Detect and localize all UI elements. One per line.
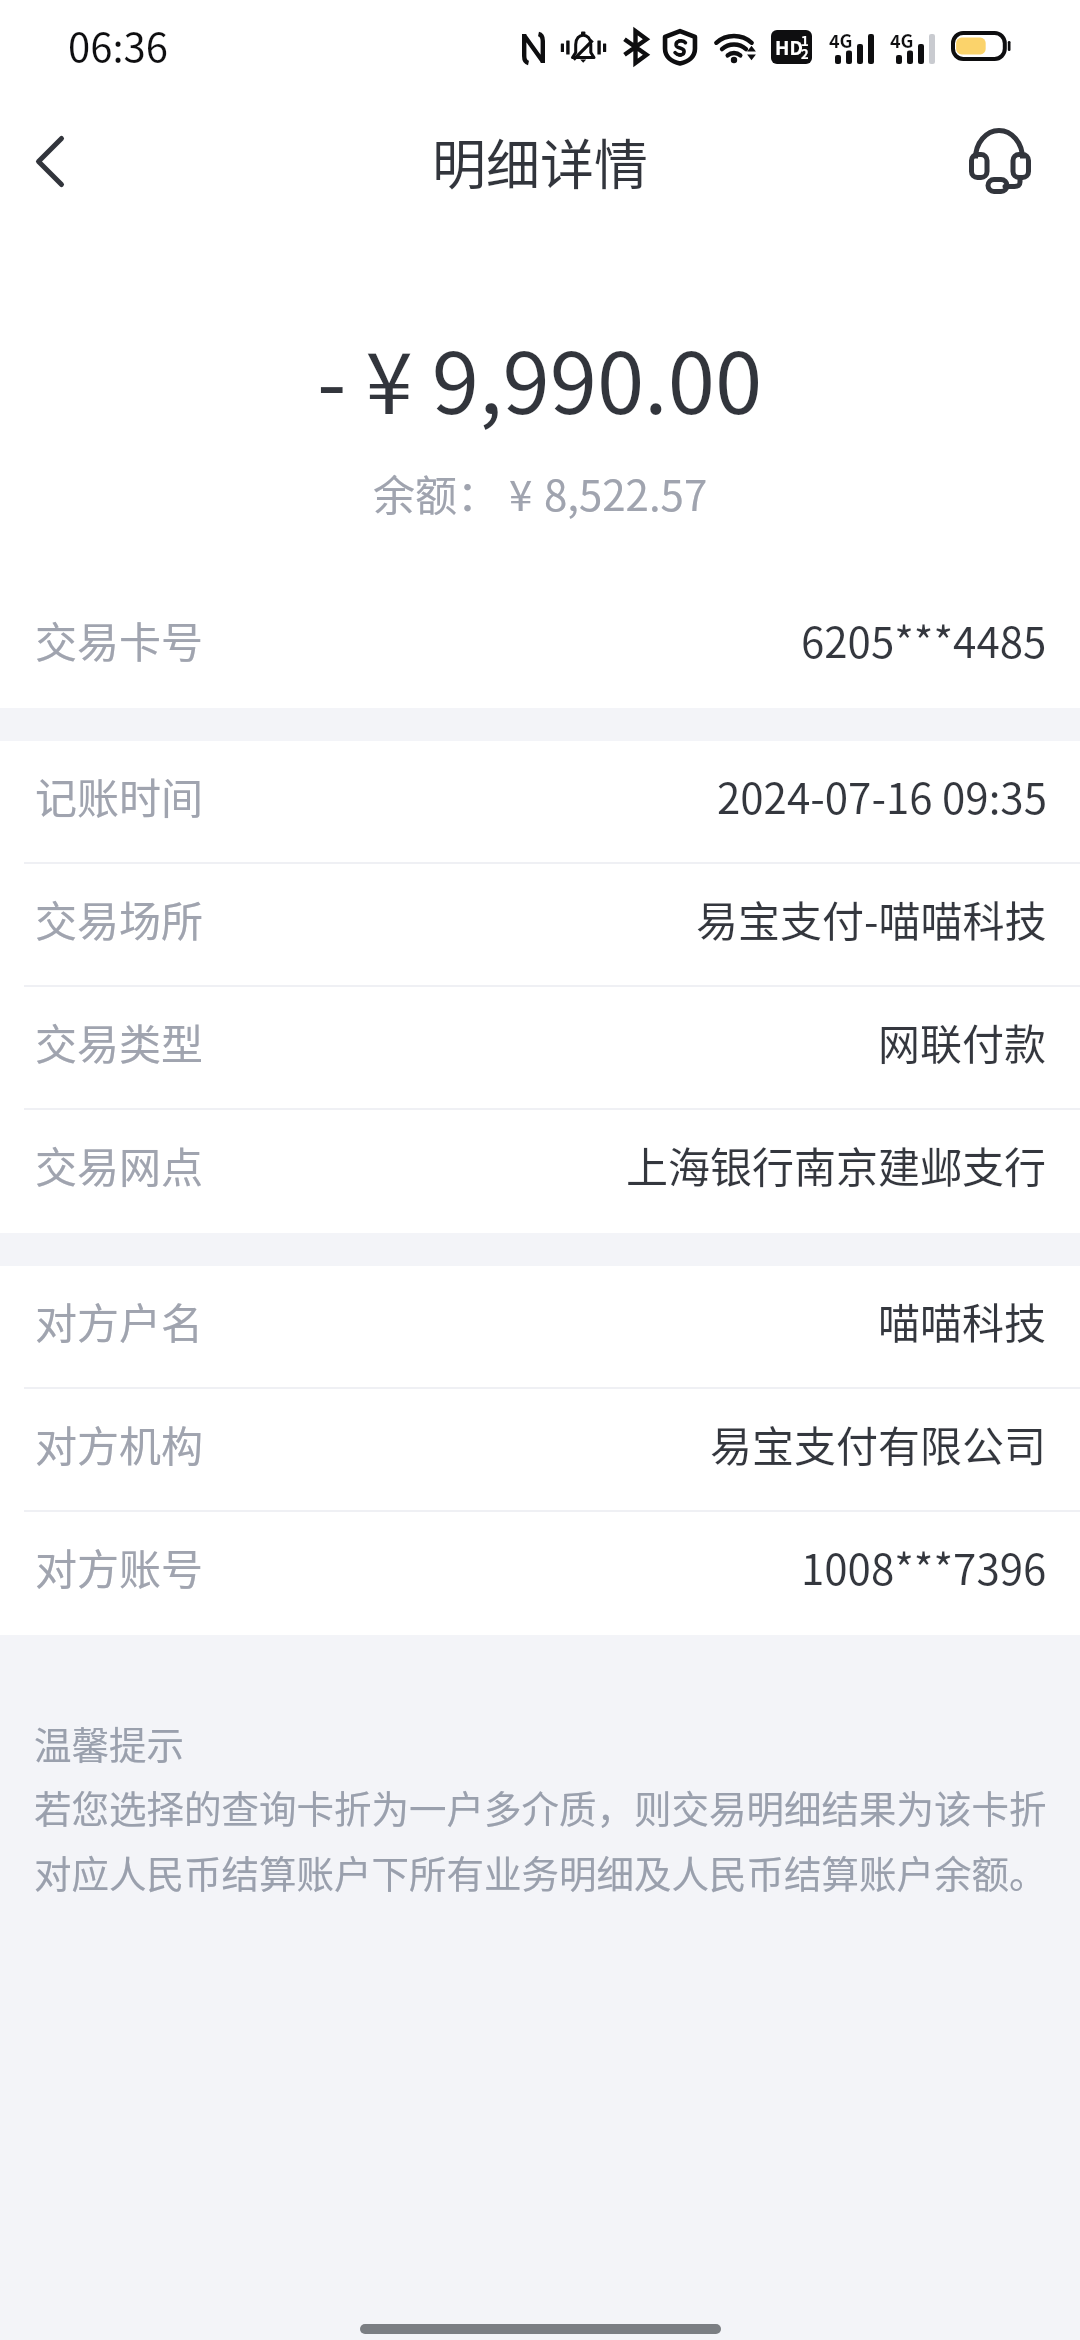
button[interactable]: 对方机构 (0, 1389, 1080, 1512)
button[interactable]: 交易类型 (0, 987, 1080, 1110)
staticText: 网联付款 (878, 1011, 1047, 1072)
staticText: 易宝支付-喵喵科技 (696, 888, 1047, 949)
staticText: 易宝支付有限公司 (710, 1413, 1047, 1474)
staticText: 1008***7396 (801, 1536, 1047, 1597)
staticText: 交易网点 (35, 1134, 204, 1195)
staticText: 4G (829, 27, 853, 53)
staticText: 对方账号 (35, 1536, 204, 1597)
staticText: 明细详情 (432, 122, 648, 200)
staticText: 对应人民币结算账户下所有业务明细及人民币结算账户余额。 (34, 1844, 1047, 1898)
staticText: 对方户名 (35, 1290, 204, 1351)
staticText: 若您选择的查询卡折为一户多介质，则交易明细结果为该卡折 (34, 1779, 1047, 1833)
staticText: 上海银行南京建邺支行 (626, 1134, 1047, 1195)
staticText: 6205***4485 (801, 609, 1047, 670)
staticText: 06:36 (68, 16, 168, 74)
button[interactable]: 对方账号 (0, 1512, 1080, 1635)
staticText: 4G (890, 27, 914, 53)
staticText: HD (775, 33, 803, 61)
staticText: 余额： (373, 462, 500, 523)
button[interactable]: Back (0, 111, 100, 211)
staticText: 交易场所 (35, 888, 204, 949)
staticText: 1 (801, 31, 809, 50)
staticText: 温馨提示 (34, 1715, 184, 1769)
button[interactable]: 记账时间 (0, 741, 1080, 864)
button[interactable]: 对方户名 (0, 1266, 1080, 1389)
button[interactable]: 交易场所 (0, 864, 1080, 987)
staticText: 交易类型 (35, 1011, 204, 1072)
staticText: 2024-07-16 09:35 (717, 765, 1047, 826)
staticText: 喵喵科技 (878, 1290, 1047, 1351)
staticText: 交易卡号 (35, 609, 204, 670)
staticText: - ¥ 9,990.00 (317, 315, 763, 438)
button[interactable]: Customer service (940, 102, 1058, 220)
staticText: 对方机构 (35, 1413, 204, 1474)
button[interactable]: 交易卡号 (0, 585, 1080, 708)
button[interactable]: 交易网点 (0, 1110, 1080, 1233)
staticText: 记账时间 (35, 765, 204, 826)
staticText: 8,522.57 (544, 462, 708, 523)
staticText: 2 (801, 44, 809, 63)
staticText: ¥ (509, 462, 533, 523)
